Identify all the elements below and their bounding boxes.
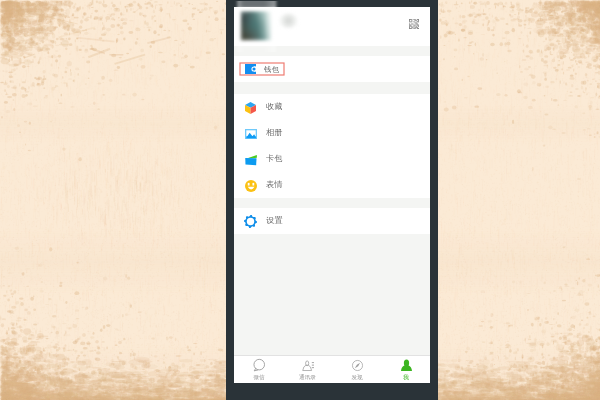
button[interactable]: 相册: [234, 120, 430, 146]
staticText: 通讯录: [299, 374, 316, 381]
staticText: 钱包: [264, 65, 279, 74]
staticText: 卡包: [266, 153, 283, 163]
button[interactable]: 通讯录: [283, 355, 332, 383]
staticText: 我: [403, 374, 409, 381]
staticText: 表情: [266, 179, 283, 189]
button[interactable]: 我: [381, 355, 430, 383]
staticText: 设置: [266, 215, 283, 225]
staticText: 微信: [253, 374, 265, 381]
button[interactable]: 钱包: [240, 63, 284, 75]
staticText: 发现: [351, 374, 363, 381]
button[interactable]: 设置: [234, 208, 430, 234]
staticText: 相册: [266, 127, 283, 137]
button[interactable]: My QR code: [234, 7, 430, 46]
button[interactable]: 表情: [234, 172, 430, 198]
button[interactable]: My QR code: [409, 19, 419, 29]
button[interactable]: 收藏: [234, 94, 430, 120]
button[interactable]: 发现: [332, 355, 381, 383]
staticText: 收藏: [266, 101, 283, 111]
button[interactable]: 卡包: [234, 146, 430, 172]
button[interactable]: 微信: [234, 355, 283, 383]
